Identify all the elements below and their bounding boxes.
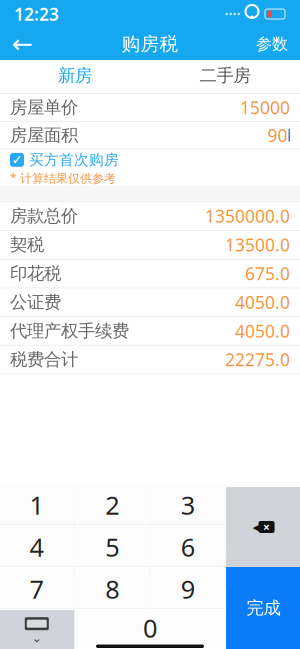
- staticText: 2: [105, 488, 119, 522]
- staticText: 22275.0: [225, 348, 290, 371]
- staticText: 房屋单价: [10, 97, 78, 118]
- button[interactable]: 0: [75, 610, 225, 649]
- button[interactable]: 9: [150, 569, 225, 609]
- button[interactable]: 完成: [226, 567, 300, 649]
- staticText: 9: [181, 572, 195, 606]
- staticText: 13500.0: [225, 233, 290, 256]
- staticText: 675.0: [245, 262, 290, 285]
- staticText: 90: [267, 124, 287, 147]
- button[interactable]: 4: [0, 527, 74, 567]
- button[interactable]: 收起键盘: [0, 610, 74, 649]
- staticText: 12:23: [14, 2, 59, 25]
- staticText: ✓: [11, 152, 22, 167]
- button[interactable]: 7: [0, 569, 74, 609]
- staticText: 5: [105, 530, 119, 564]
- staticText: 购房税: [121, 32, 178, 55]
- button[interactable]: 2: [75, 485, 150, 525]
- staticText: 7: [29, 572, 43, 606]
- staticText: 契税: [10, 234, 44, 255]
- staticText: 税费合计: [10, 349, 78, 370]
- button[interactable]: 返回: [0, 28, 44, 60]
- staticText: 新房: [58, 65, 92, 86]
- staticText: 参数: [256, 34, 288, 54]
- staticText: 1350000.0: [205, 205, 290, 228]
- staticText: 4050.0: [235, 319, 290, 342]
- staticText: 15000: [240, 96, 290, 119]
- staticText: 0: [143, 611, 157, 645]
- staticText: 印花税: [10, 263, 61, 284]
- button[interactable]: 1: [0, 485, 74, 525]
- staticText: 完成: [246, 597, 280, 619]
- button[interactable]: 二手房: [150, 60, 300, 93]
- staticText: 8: [105, 572, 119, 606]
- button[interactable]: 删除: [226, 487, 300, 567]
- button[interactable]: 3: [150, 485, 225, 525]
- button[interactable]: 新房: [0, 60, 150, 93]
- staticText: 4: [29, 530, 43, 564]
- staticText: ←: [11, 30, 32, 58]
- staticText: 买方首次购房: [29, 151, 119, 169]
- staticText: ◀: [252, 520, 261, 534]
- button[interactable]: 5: [75, 527, 150, 567]
- staticText: 6: [181, 530, 195, 564]
- staticText: 1: [29, 488, 43, 522]
- button[interactable]: 8: [75, 569, 150, 609]
- staticText: 4050.0: [235, 291, 290, 314]
- staticText: 房款总价: [10, 205, 78, 227]
- staticText: 房屋面积: [10, 125, 78, 146]
- button[interactable]: 6: [150, 527, 225, 567]
- staticText: ⌄: [32, 631, 42, 645]
- staticText: 公证费: [10, 292, 61, 313]
- staticText: * 计算结果仅供参考: [10, 170, 116, 186]
- button[interactable]: 参数: [244, 28, 300, 60]
- staticText: 代理产权手续费: [10, 320, 129, 342]
- button[interactable]: ✓: [0, 149, 300, 170]
- staticText: 3: [181, 488, 195, 522]
- staticText: 二手房: [199, 65, 250, 86]
- staticText: ×: [263, 519, 270, 535]
